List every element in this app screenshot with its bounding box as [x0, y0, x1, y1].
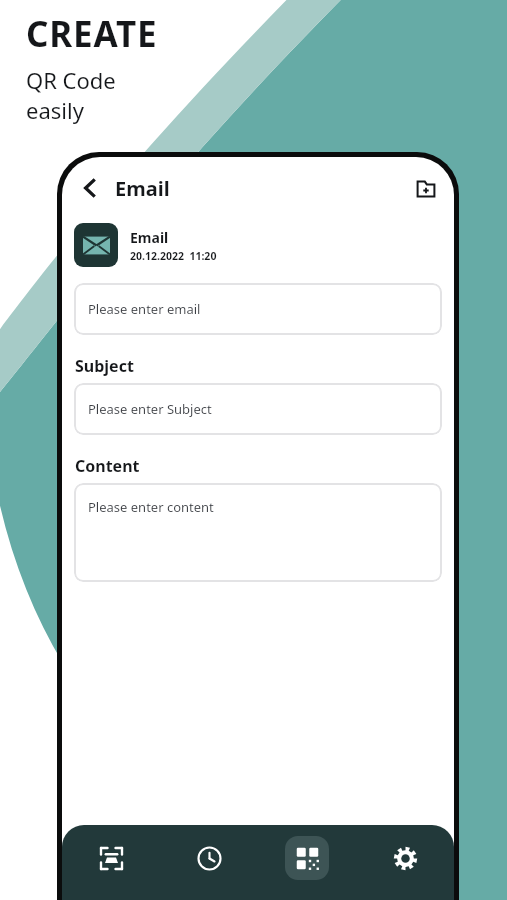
button[interactable]: History	[160, 836, 258, 880]
button[interactable]: Please enter Subject	[74, 383, 442, 435]
button[interactable]: Create	[258, 836, 356, 880]
button[interactable]: Email	[74, 223, 442, 267]
staticText: Please enter Subject	[88, 400, 212, 418]
button[interactable]: Scan	[62, 836, 160, 880]
staticText: Please enter content	[88, 498, 214, 516]
staticText: QR Code	[26, 65, 116, 95]
staticText: Email	[130, 228, 169, 247]
button[interactable]: Please enter email	[74, 283, 442, 335]
button[interactable]: Please enter content	[74, 483, 442, 582]
staticText: easily	[26, 95, 84, 125]
staticText: Content	[75, 455, 140, 477]
staticText: CREATE	[26, 10, 158, 58]
button[interactable]: Back	[70, 168, 110, 208]
staticText: Subject	[75, 355, 134, 377]
button[interactable]: Settings	[356, 836, 454, 880]
staticText: 20.12.2022 11:20	[130, 249, 217, 263]
staticText: Please enter email	[88, 300, 201, 318]
button[interactable]: New folder	[406, 168, 446, 208]
staticText: Email	[115, 175, 170, 202]
